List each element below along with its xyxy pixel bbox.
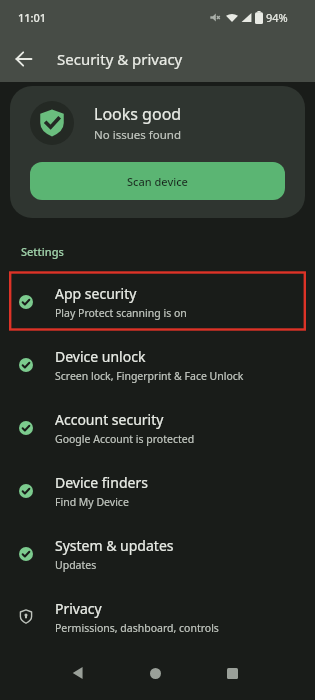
- button[interactable]: [72, 667, 84, 679]
- button[interactable]: Device finders: [0, 459, 315, 522]
- staticText: Account security: [55, 410, 164, 429]
- staticText: 94%: [266, 10, 288, 25]
- staticText: System & updates: [55, 536, 174, 555]
- staticText: Settings: [21, 244, 64, 259]
- staticText: 11:01: [18, 10, 47, 25]
- staticText: Looks good: [94, 103, 182, 125]
- button[interactable]: [150, 668, 161, 679]
- staticText: Google Account is protected: [55, 432, 195, 446]
- staticText: Scan device: [127, 174, 188, 189]
- button[interactable]: System & updates: [0, 522, 315, 585]
- staticText: Find My Device: [55, 495, 129, 509]
- button[interactable]: Privacy: [0, 585, 315, 648]
- button[interactable]: App security: [0, 270, 315, 333]
- staticText: App security: [55, 284, 137, 303]
- button[interactable]: [227, 668, 238, 679]
- button[interactable]: [0, 35, 47, 82]
- button[interactable]: Device unlock: [0, 333, 315, 396]
- button[interactable]: Account security: [0, 396, 315, 459]
- button[interactable]: Scan device: [30, 162, 285, 200]
- staticText: Screen lock, Fingerprint & Face Unlock: [55, 369, 244, 383]
- staticText: Play Protect scanning is on: [55, 306, 187, 320]
- staticText: Device finders: [55, 473, 148, 492]
- staticText: Device unlock: [55, 347, 146, 366]
- staticText: Privacy: [55, 599, 102, 618]
- staticText: Security & privacy: [57, 49, 183, 69]
- staticText: Updates: [55, 558, 97, 572]
- staticText: No issues found: [94, 127, 181, 143]
- staticText: Permissions, dashboard, controls: [55, 621, 219, 635]
